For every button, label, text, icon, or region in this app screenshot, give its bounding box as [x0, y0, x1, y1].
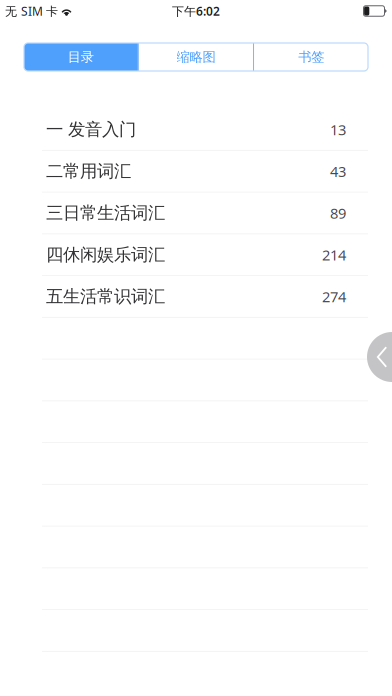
staticText: 三日常生活词汇 — [46, 202, 165, 224]
staticText: 274 — [322, 287, 346, 306]
staticText: 一 发音入门 — [46, 119, 136, 140]
button[interactable]: 缩略图 — [139, 43, 253, 71]
button[interactable]: Back — [367, 332, 392, 382]
staticText: 五生活常识词汇 — [46, 286, 165, 307]
staticText: 89 — [330, 203, 346, 223]
staticText: 书签 — [298, 49, 324, 65]
button[interactable]: 四休闲娱乐词汇 — [0, 234, 392, 276]
staticText: 二常用词汇 — [46, 161, 131, 182]
staticText: 无 SIM 卡 — [5, 3, 58, 19]
staticText: 下午6:02 — [172, 3, 220, 19]
button[interactable]: 二常用词汇 — [0, 151, 392, 193]
staticText: 13 — [330, 120, 346, 139]
staticText: 43 — [330, 161, 346, 181]
staticText: 缩略图 — [176, 49, 215, 65]
button[interactable]: 一 发音入门 — [0, 109, 392, 151]
button[interactable]: 三日常生活词汇 — [0, 192, 392, 234]
button[interactable]: 五生活常识词汇 — [0, 276, 392, 318]
staticText: 四休闲娱乐词汇 — [46, 244, 165, 265]
staticText: 目录 — [68, 49, 94, 65]
button[interactable]: 书签 — [254, 43, 368, 71]
button[interactable]: 目录 — [24, 43, 138, 71]
staticText: 214 — [322, 245, 346, 264]
